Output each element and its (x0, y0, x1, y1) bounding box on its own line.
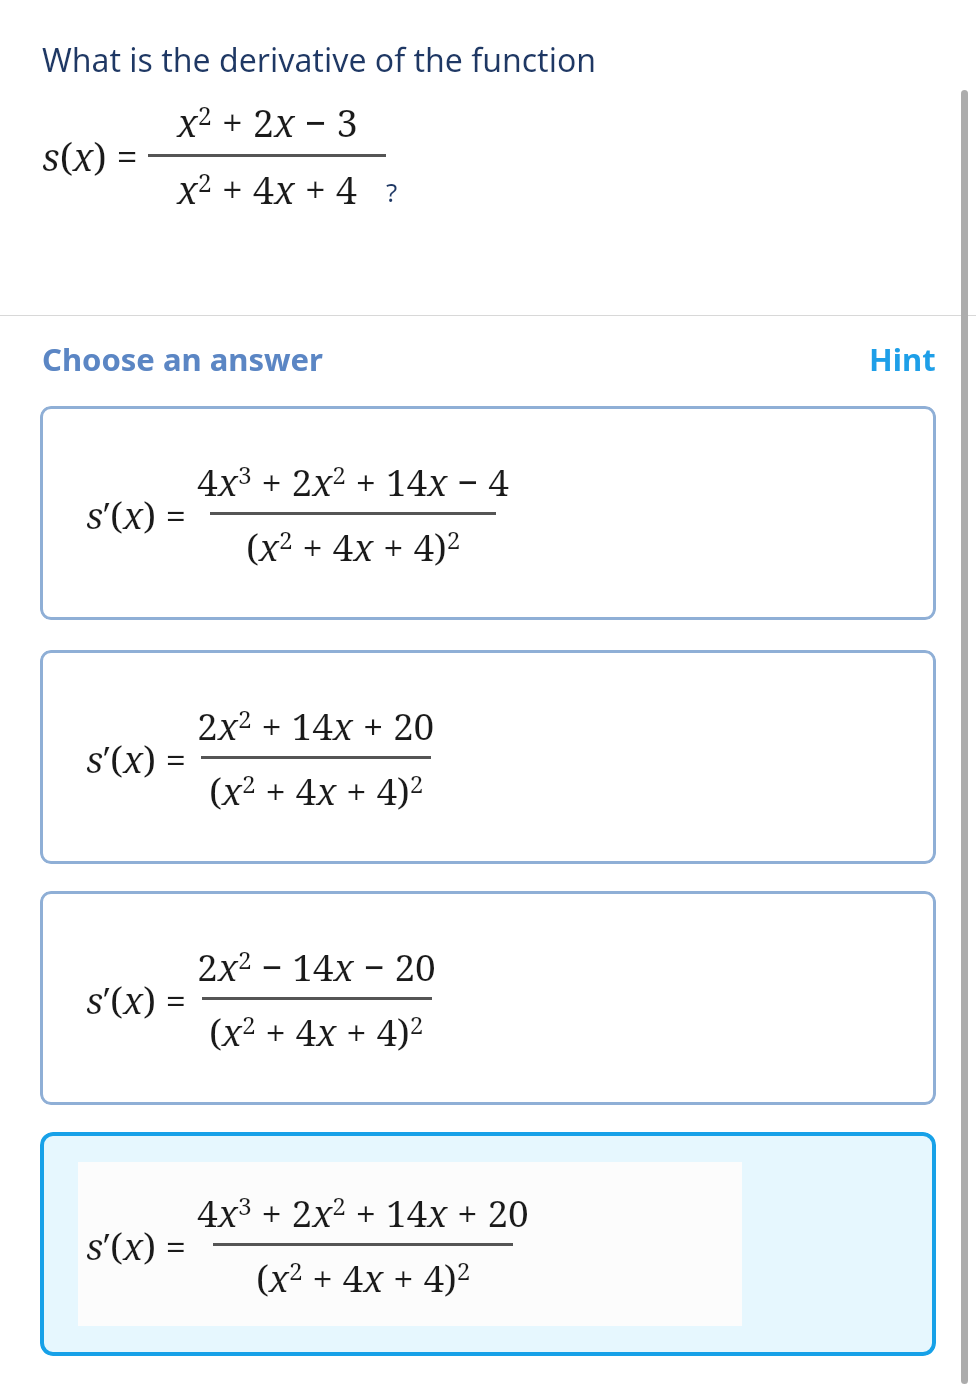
staticText: (x2 + 4x + 4)2 (246, 521, 461, 571)
staticText: (x2 + 4x + 4)2 (209, 1006, 424, 1056)
staticText: s′(x) = (86, 489, 187, 539)
button[interactable]: s′(x) = (40, 891, 936, 1105)
staticText: 2x2 + 14x + 20 (197, 700, 435, 750)
staticText: (x2 + 4x + 4)2 (256, 1252, 471, 1302)
button[interactable]: s′(x) = (40, 1132, 936, 1356)
staticText: (x2 + 4x + 4)2 (209, 765, 424, 815)
staticText: What is the derivative of the function (42, 38, 597, 82)
staticText: x2 + 2x − 3 (177, 96, 358, 148)
staticText: s′(x) = (86, 1220, 187, 1270)
staticText: s(x) = (42, 130, 138, 182)
staticText: s′(x) = (86, 974, 187, 1024)
button[interactable]: Hint (869, 338, 936, 380)
staticText: 2x2 − 14x − 20 (197, 941, 436, 991)
staticText: 4x3 + 2x2 + 14x + 20 (197, 1187, 529, 1237)
staticText: ? (386, 174, 398, 209)
button[interactable]: s′(x) = (40, 406, 936, 620)
button[interactable]: Choose an answer (42, 338, 323, 380)
button[interactable]: s′(x) = (40, 650, 936, 864)
staticText: s′(x) = (86, 733, 187, 783)
staticText: x2 + 4x + 4 (177, 163, 358, 215)
staticText: 4x3 + 2x2 + 14x − 4 (197, 456, 509, 506)
